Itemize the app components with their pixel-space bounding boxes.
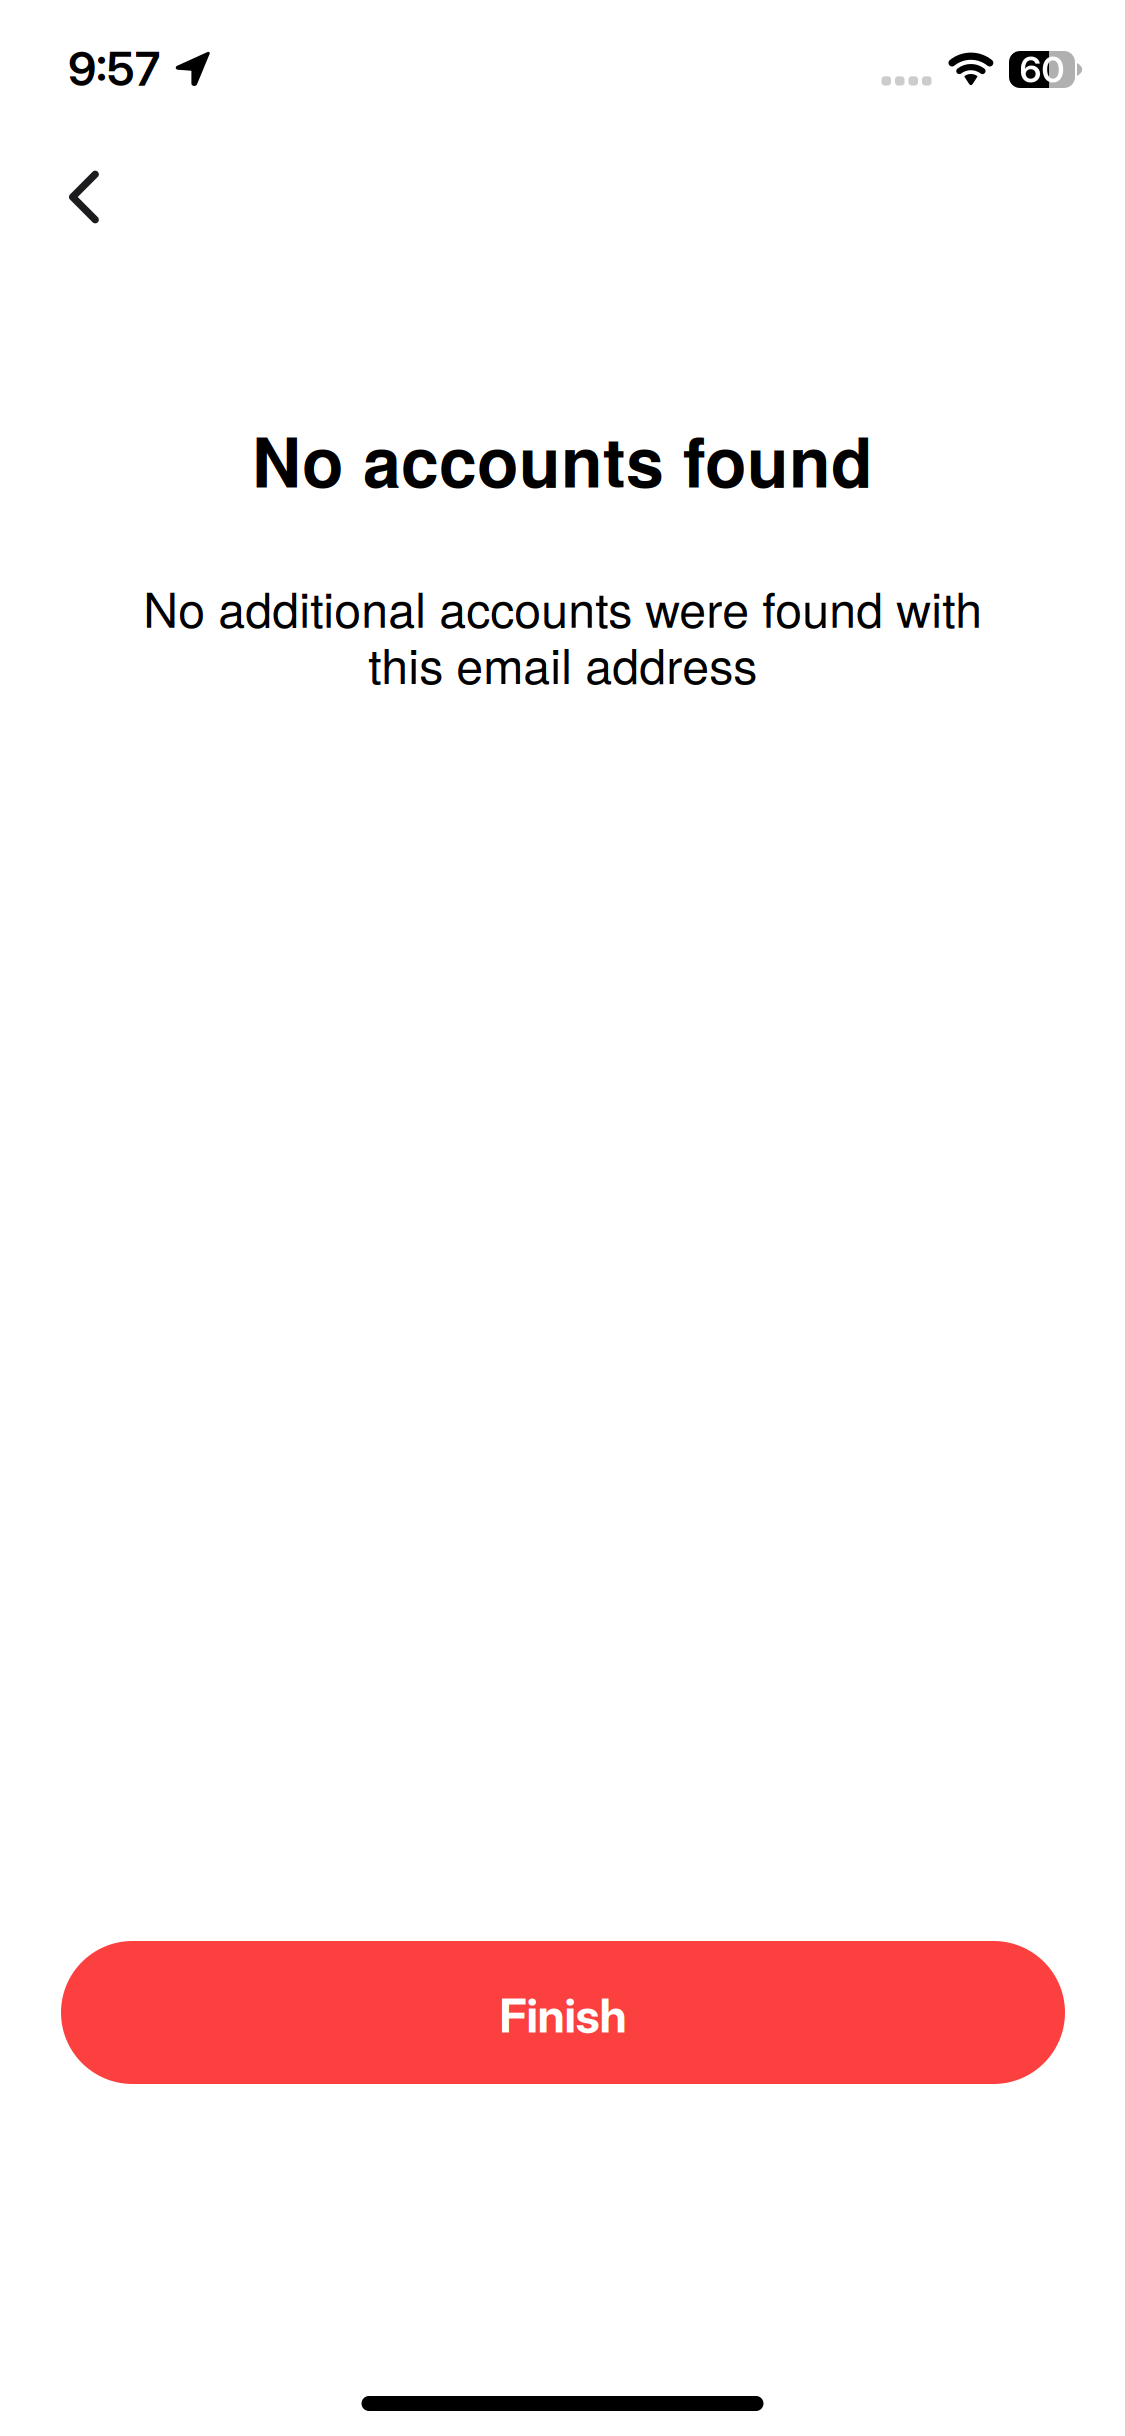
staticText: No additional accounts were found with	[143, 572, 982, 641]
staticText: Finish	[499, 1987, 626, 2044]
button[interactable]: Finish	[61, 1941, 1065, 2084]
staticText: this email address	[368, 628, 757, 698]
staticText: No accounts found	[252, 411, 873, 508]
button[interactable]: Back	[0, 136, 132, 236]
staticText: 60	[1019, 48, 1064, 91]
staticText: 9:57	[68, 40, 160, 97]
